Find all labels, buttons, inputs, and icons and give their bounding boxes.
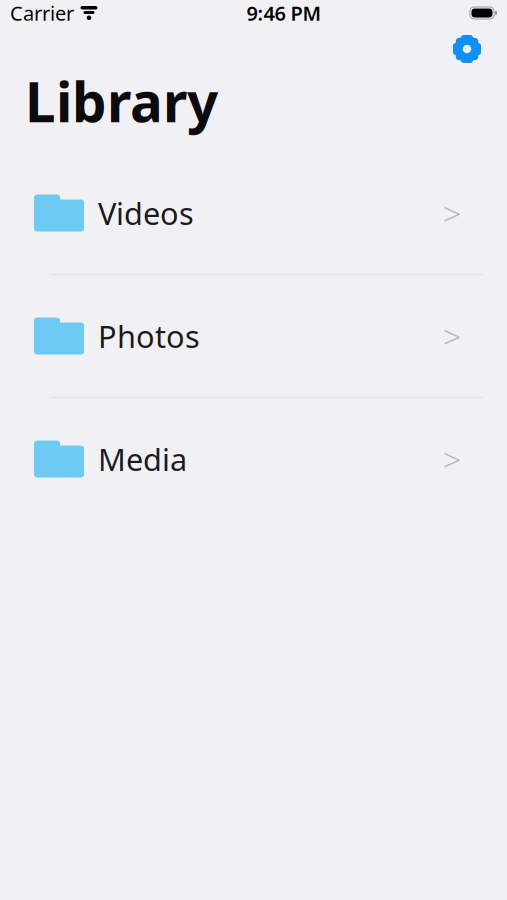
button[interactable]: Videos: [0, 152, 507, 274]
staticText: Photos: [98, 316, 200, 356]
button[interactable]: Media: [0, 398, 507, 520]
staticText: Media: [98, 439, 187, 479]
staticText: >: [443, 438, 461, 480]
staticText: Library: [25, 65, 218, 137]
button[interactable]: Settings: [445, 27, 489, 71]
button[interactable]: Photos: [0, 275, 507, 397]
staticText: Videos: [98, 193, 194, 233]
staticText: Carrier: [10, 0, 74, 26]
staticText: >: [443, 315, 461, 357]
staticText: 9:46 PM: [246, 0, 321, 26]
staticText: >: [443, 192, 461, 234]
